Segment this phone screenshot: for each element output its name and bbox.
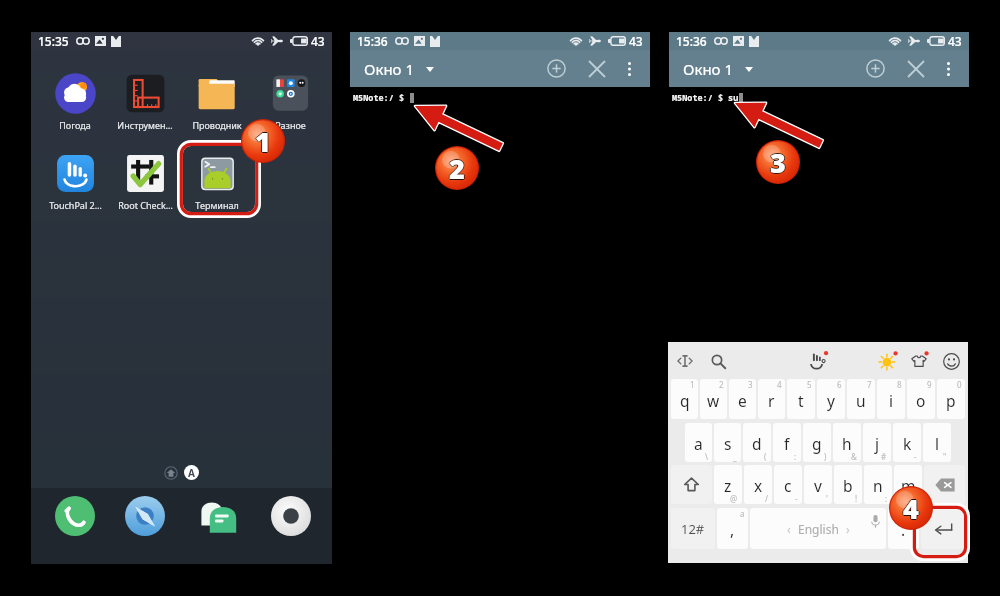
staticText: TouchPal 2… xyxy=(49,199,102,211)
staticText: m xyxy=(901,475,916,496)
button[interactable]: / xyxy=(744,465,772,504)
button[interactable]: 4 xyxy=(758,379,785,419)
staticText: ( xyxy=(764,451,767,462)
button[interactable]: Home page xyxy=(164,466,178,480)
button[interactable]: 12# xyxy=(671,508,715,549)
button[interactable]: Enter xyxy=(921,508,965,549)
button[interactable]: # xyxy=(863,423,891,462)
button[interactable]: : xyxy=(864,465,892,504)
button[interactable]: ) xyxy=(803,423,831,462)
button[interactable]: More options xyxy=(933,54,963,84)
button[interactable]: 2 xyxy=(700,379,727,419)
button[interactable]: & xyxy=(833,423,861,462)
staticText: 2 xyxy=(449,151,465,188)
staticText: 4 xyxy=(902,490,918,527)
staticText: q xyxy=(680,390,690,411)
staticText: u xyxy=(856,390,866,411)
staticText: M5Note:/ $ xyxy=(353,92,410,104)
button[interactable]: Themes xyxy=(905,347,933,375)
button[interactable]: Move cursor xyxy=(671,347,699,375)
staticText: 4 xyxy=(903,489,919,526)
staticText: 1 xyxy=(690,379,695,390)
staticText: 4 xyxy=(903,490,919,527)
button[interactable]: Разное xyxy=(254,73,326,131)
button[interactable]: Phone xyxy=(55,496,95,536)
staticText: › xyxy=(846,521,850,537)
staticText: 3 xyxy=(770,143,786,180)
button[interactable]: ( xyxy=(743,423,771,462)
button[interactable]: 5 xyxy=(787,379,815,419)
staticText: Терминал xyxy=(195,199,239,211)
button[interactable]: 9 xyxy=(907,379,935,419)
staticText: Разное xyxy=(275,119,306,131)
button[interactable]: @ xyxy=(714,465,742,504)
button[interactable]: Stickers xyxy=(874,347,902,375)
button[interactable]: Погода xyxy=(39,73,111,131)
button[interactable]: TouchPal 2… xyxy=(39,153,111,211)
button[interactable]: 8 xyxy=(877,379,905,419)
staticText: 3 xyxy=(770,144,786,181)
button[interactable]: ? xyxy=(894,465,922,504)
staticText: ' xyxy=(826,493,828,504)
staticText: 1 xyxy=(256,123,272,160)
button[interactable]: 1 xyxy=(671,379,698,419)
button[interactable]: ' xyxy=(804,465,832,504)
staticText: y xyxy=(827,390,835,411)
button[interactable]: Add window xyxy=(540,52,573,85)
button[interactable]: . xyxy=(888,508,919,549)
button[interactable]: Emoji xyxy=(937,347,965,375)
button[interactable]: Root Check… xyxy=(109,153,181,211)
button[interactable]: 0 xyxy=(937,379,965,419)
staticText: 15:35 xyxy=(38,33,69,49)
button[interactable]: Browser xyxy=(125,496,165,536)
staticText: v xyxy=(814,475,822,496)
button[interactable]: Close window xyxy=(580,52,613,85)
staticText: " xyxy=(943,451,947,462)
staticText: 4 xyxy=(903,491,919,528)
staticText: 43 xyxy=(629,33,643,49)
button[interactable]: Add window xyxy=(859,52,892,85)
button[interactable]: Shift xyxy=(671,465,712,504)
staticText: 8 xyxy=(897,379,902,390)
staticText: . xyxy=(901,519,906,540)
button[interactable]: Инструмен… xyxy=(109,73,181,131)
button[interactable]: Окно 1 xyxy=(669,54,763,84)
button[interactable]: Терминал xyxy=(181,153,253,211)
staticText: English xyxy=(798,521,839,537)
button[interactable]: Backspace xyxy=(924,465,965,504)
button[interactable]: Messages xyxy=(199,496,239,536)
button[interactable]: ‹ xyxy=(750,508,886,549)
staticText: o xyxy=(916,390,926,411)
button[interactable]: \ xyxy=(685,423,712,462)
button[interactable]: - xyxy=(774,465,802,504)
button[interactable]: Camera xyxy=(271,496,311,536)
staticText: Проводник xyxy=(192,119,242,131)
button[interactable]: 7 xyxy=(847,379,875,419)
staticText: _ xyxy=(733,451,737,462)
staticText: ‹ xyxy=(787,521,791,537)
button[interactable]: " xyxy=(923,423,951,462)
button[interactable]: Окно 1 xyxy=(350,54,444,84)
button[interactable]: - xyxy=(893,423,921,462)
button[interactable]: a xyxy=(717,508,748,549)
button[interactable]: 3 xyxy=(729,379,756,419)
button[interactable]: : xyxy=(773,423,801,462)
button[interactable]: App page xyxy=(184,465,199,480)
staticText: 1 xyxy=(254,123,270,160)
button[interactable]: Search xyxy=(704,347,732,375)
button[interactable]: Handwriting xyxy=(803,347,831,375)
button[interactable]: 6 xyxy=(817,379,845,419)
staticText: i xyxy=(889,390,893,411)
button[interactable]: Проводник xyxy=(181,73,253,131)
staticText: Root Check… xyxy=(118,199,173,211)
staticText: ! xyxy=(855,493,858,504)
staticText: Окно 1 xyxy=(683,59,733,79)
staticText: n xyxy=(873,475,883,496)
button[interactable]: Close window xyxy=(899,52,932,85)
button[interactable]: ! xyxy=(834,465,862,504)
staticText: l xyxy=(935,433,939,454)
button[interactable]: More options xyxy=(614,54,644,84)
button[interactable]: _ xyxy=(714,423,741,462)
staticText: p xyxy=(946,390,956,411)
staticText: 6 xyxy=(837,379,842,390)
